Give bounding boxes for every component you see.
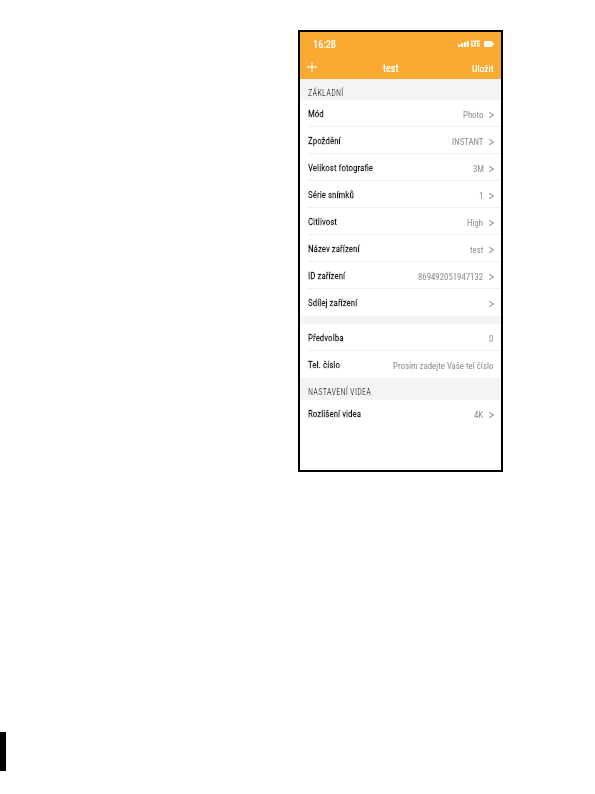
button[interactable]: Mód [300, 100, 501, 127]
staticText: ZÁKLADNÍ [308, 88, 344, 98]
staticText: Velikost fotografie [308, 163, 374, 174]
staticText: Prosím zadejte Vaše tel číslo [393, 361, 494, 371]
staticText: Tel. číslo [308, 360, 340, 371]
staticText: Předvolba [308, 333, 344, 344]
staticText: 0 [489, 334, 494, 344]
button[interactable]: Zpoždění [300, 127, 501, 154]
button[interactable]: Předvolba [300, 324, 501, 351]
staticText: ID zařízení [308, 271, 346, 282]
staticText: 3M [473, 164, 484, 174]
button[interactable]: Rozlišení videa [300, 400, 501, 427]
staticText: INSTANT [452, 137, 484, 147]
button[interactable]: Citlivost [300, 208, 501, 235]
staticText: 4K [474, 410, 484, 420]
staticText: Série snímků [308, 190, 354, 201]
button[interactable]: Tel. číslo [300, 351, 501, 378]
staticText: Photo [463, 110, 484, 120]
staticText: test [470, 245, 484, 255]
button[interactable]: ID zařízení [300, 262, 501, 289]
button[interactable]: Název zařízení [300, 235, 501, 262]
button[interactable]: Sdílej zařízení [300, 289, 501, 316]
staticText: Zpoždění [308, 136, 341, 147]
staticText: Rozlišení videa [308, 409, 362, 420]
staticText: test [383, 63, 399, 75]
staticText: Citlivost [308, 217, 338, 228]
button[interactable]: Velikost fotografie [300, 154, 501, 181]
staticText: High [467, 218, 484, 228]
staticText: 16:28 [313, 38, 336, 50]
staticText: LTE [471, 40, 481, 48]
staticText: Mód [308, 109, 324, 120]
staticText: 869492051947132 [418, 272, 484, 282]
staticText: Název zařízení [308, 244, 360, 255]
staticText: Uložit [472, 63, 494, 74]
button[interactable]: Add [300, 56, 326, 79]
staticText: Sdílej zařízení [308, 298, 358, 309]
button[interactable]: Uložit [465, 56, 501, 79]
button[interactable]: Série snímků [300, 181, 501, 208]
staticText: NASTAVENÍ VIDEA [308, 387, 372, 397]
staticText: 1 [479, 191, 484, 201]
